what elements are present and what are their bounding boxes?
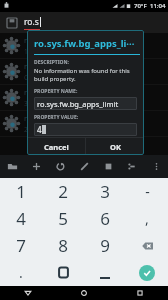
- button[interactable]: ro.sf.lcd_density: [0, 85, 168, 110]
- button[interactable]: 8: [42, 232, 84, 259]
- button[interactable]: 7: [0, 232, 42, 259]
- button[interactable]: ,: [126, 205, 168, 232]
- button[interactable]: Cancel: [27, 138, 85, 155]
- staticText: ,: [145, 209, 149, 228]
- staticText: OPTIONAL: [24, 73, 57, 82]
- button[interactable]: 4: [34, 123, 137, 136]
- button[interactable]: Add: [24, 155, 48, 178]
- button[interactable]: More options: [144, 155, 168, 178]
- button[interactable]: ro.sys.fw.bg_apps_limit: [34, 97, 137, 110]
- button[interactable]: Refresh: [48, 155, 72, 178]
- staticText: DESCRIPTION:: [34, 59, 70, 66]
- staticText: .: [19, 263, 23, 282]
- staticText: ro.sys.fw.bg_apps_limit: [24, 61, 106, 71]
- button[interactable]: Recents: [112, 286, 168, 300]
- button[interactable]: -: [126, 178, 168, 205]
- staticText: 8: [58, 234, 68, 257]
- staticText: ro.sys.sdcardfs: [24, 113, 77, 123]
- staticText: OK: [110, 142, 121, 152]
- button[interactable]: 4: [0, 205, 42, 232]
- staticText: 300: [24, 99, 36, 108]
- button[interactable]: 2: [42, 178, 84, 205]
- staticText: 4: [16, 207, 26, 230]
- staticText: 1: [16, 180, 26, 203]
- button[interactable]: 1: [0, 178, 42, 205]
- staticText: 3: [100, 180, 110, 203]
- button[interactable]: .: [0, 259, 42, 286]
- button[interactable]: 5: [42, 205, 84, 232]
- button[interactable]: ro.setupwizard.enterprise_mode: [0, 33, 168, 58]
- staticText: 2: [58, 180, 68, 203]
- staticText: 5: [58, 207, 68, 230]
- button[interactable]: Back: [0, 286, 56, 300]
- button[interactable]: Save: [0, 12, 168, 33]
- staticText: PROPERTY VALUE:: [34, 114, 79, 121]
- button[interactable]: Open folder: [0, 155, 24, 178]
- staticText: 6: [100, 207, 110, 230]
- staticText: 1: [24, 47, 28, 56]
- staticText: ro.s: [24, 16, 39, 28]
- button[interactable]: ro.sys.fw.bg_apps_limit: [0, 59, 168, 84]
- staticText: No information was found for this build …: [34, 67, 137, 83]
- button[interactable]: Stop: [96, 155, 120, 178]
- button[interactable]: 6: [84, 205, 126, 232]
- button[interactable]: Edit: [72, 155, 96, 178]
- staticText: 4: [37, 124, 42, 135]
- staticText: 11:04: [150, 2, 166, 10]
- button[interactable]: 3: [84, 178, 126, 205]
- button[interactable]: Save: [5, 16, 18, 29]
- button[interactable]: OK: [86, 138, 144, 155]
- staticText: 20: [24, 125, 32, 134]
- staticText: ro.setupwizard.enterprise_mode: [24, 35, 139, 45]
- button[interactable]: 9: [84, 232, 126, 259]
- button[interactable]: Home: [56, 286, 112, 300]
- staticText: 9: [100, 234, 110, 257]
- staticText: -: [145, 182, 150, 201]
- button[interactable]: [42, 259, 84, 286]
- staticText: 7: [16, 234, 26, 257]
- staticText: ro.sys.fw.bg_apps_li···: [34, 37, 135, 50]
- button[interactable]: Backspace: [126, 232, 168, 259]
- staticText: ro.sys.fw.bg_apps_limit: [37, 99, 119, 109]
- button[interactable]: Enter: [126, 259, 168, 286]
- staticText: ro.sf.lcd_density: [24, 87, 81, 97]
- button[interactable]: Cut: [120, 155, 144, 178]
- staticText: PROPERTY NAME:: [34, 88, 78, 95]
- button[interactable]: ro.sys.sdcardfs: [0, 111, 168, 136]
- button[interactable]: [84, 259, 126, 286]
- staticText: 70°F: [134, 2, 147, 10]
- staticText: Cancel: [44, 142, 69, 152]
